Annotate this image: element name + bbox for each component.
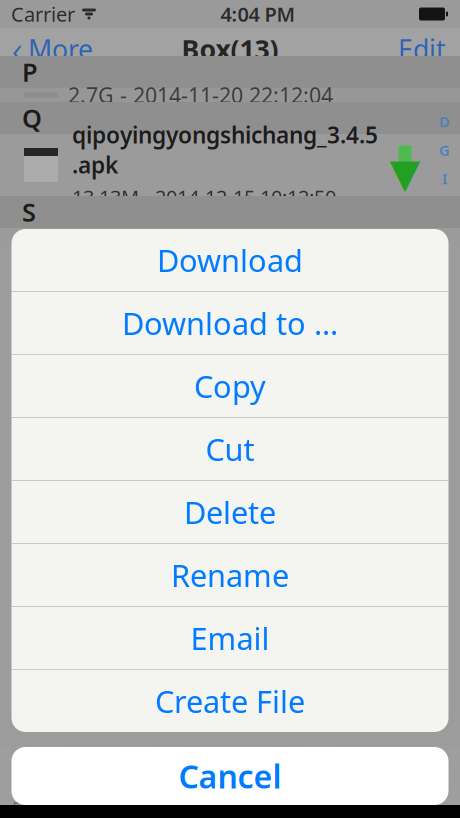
button[interactable]: Cancel (11, 747, 448, 805)
staticText: P (22, 55, 38, 89)
staticText: 13.13M - 2014-12-15 10:12:50 (72, 184, 336, 210)
button[interactable]: Dropbox (184, 746, 276, 818)
staticText: Download (157, 240, 303, 280)
button[interactable]: Copy (11, 355, 448, 417)
button[interactable]: Cut (11, 418, 448, 480)
staticText: iCloud Drive (112, 774, 163, 818)
staticText: Download to ... (122, 303, 338, 343)
staticText: Box(13) (181, 31, 278, 67)
staticText: Copy (194, 366, 266, 406)
button[interactable]: ‹ (0, 28, 105, 70)
button[interactable]: Rename (11, 544, 448, 606)
button[interactable]: Download to ... (11, 292, 448, 354)
staticText: ‹ (12, 22, 23, 75)
button[interactable]: Edit (384, 28, 460, 70)
staticText: Create File (155, 681, 305, 721)
staticText: More (392, 785, 435, 808)
button[interactable]: Google Drive (276, 746, 368, 818)
staticText: Edit (398, 31, 446, 67)
button[interactable]: Download (11, 229, 448, 291)
staticText: Delete (184, 492, 276, 532)
button[interactable]: iCloud Drive (92, 746, 184, 818)
staticText: I (442, 169, 447, 188)
button[interactable]: File Explorer (0, 746, 92, 818)
staticText: Cut (205, 429, 254, 469)
staticText: Cancel (178, 755, 281, 797)
staticText: More (28, 31, 93, 67)
button[interactable]: Delete (11, 481, 448, 543)
staticText: S (22, 195, 36, 229)
button[interactable]: More (368, 746, 460, 818)
staticText: qipoyingyongshichang_3.4.5.apk (72, 120, 378, 180)
staticText: 4:04 PM (220, 1, 295, 27)
button[interactable]: Email (11, 607, 448, 669)
staticText: Carrier (11, 1, 75, 27)
staticText: ▼ (389, 151, 420, 196)
staticText: Google Drive (293, 774, 351, 818)
staticText: File Explorer (12, 774, 80, 818)
staticText: Email (190, 618, 269, 658)
staticText: 2.7G - 2014-11-20 22:12:04 (68, 81, 333, 109)
staticText: D (439, 112, 450, 131)
button[interactable]: Create File (11, 670, 448, 732)
staticText: Q (22, 101, 42, 135)
staticText: Rename (171, 555, 289, 595)
staticText: Dropbox (194, 785, 265, 808)
staticText: G (439, 140, 450, 160)
